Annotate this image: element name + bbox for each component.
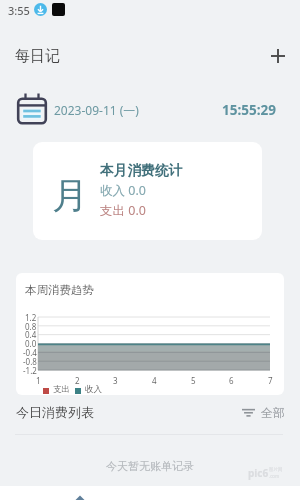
staticText: 1 [36, 375, 41, 386]
staticText: 2023-09-11 (一) [54, 102, 139, 118]
staticText: 15:55:29 [222, 101, 276, 119]
button[interactable]: 全部 [242, 405, 285, 420]
staticText: 6 [229, 375, 234, 386]
staticText: -1.2 [23, 365, 37, 376]
staticText: .com [269, 473, 280, 479]
staticText: 0.8 [25, 321, 37, 332]
staticText: 收入 0.0 [100, 182, 146, 199]
staticText: 7 [268, 375, 273, 386]
staticText: 今日消费列表 [16, 404, 94, 420]
button[interactable]: Home [66, 486, 94, 500]
staticText: 3:55 [8, 3, 30, 18]
staticText: 支出 0.0 [100, 202, 146, 219]
staticText: 图片网 [269, 467, 283, 473]
staticText: 1.2 [25, 312, 37, 323]
staticText: 4 [152, 375, 157, 386]
staticText: 0.0 [25, 338, 37, 349]
staticText: -0.8 [23, 356, 37, 367]
staticText: 今天暂无账单记录 [106, 459, 194, 473]
staticText: 0.4 [25, 329, 37, 340]
staticText: 2 [75, 375, 80, 386]
staticText: 月 [52, 173, 88, 218]
staticText: pic6 [248, 466, 269, 480]
staticText: 3 [113, 375, 118, 386]
staticText: 每日记 [15, 47, 60, 66]
staticText: 全部 [261, 405, 285, 420]
staticText: 5 [191, 375, 196, 386]
button[interactable]: 月 [33, 142, 262, 240]
staticText: 支出 [53, 384, 70, 395]
staticText: 本月消费统计 [100, 162, 183, 179]
staticText: 收入 [85, 384, 102, 395]
staticText: -0.4 [23, 347, 37, 358]
button[interactable]: Add record [265, 43, 291, 69]
staticText: 本周消费趋势 [25, 283, 94, 297]
